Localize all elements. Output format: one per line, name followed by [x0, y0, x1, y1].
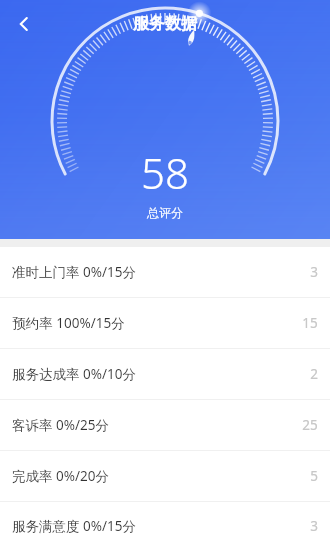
staticText: 58 — [141, 144, 189, 201]
button[interactable]: 准时上门率 0%/15分 — [0, 247, 330, 297]
button[interactable]: 完成率 0%/20分 — [0, 451, 330, 501]
staticText: 25 — [302, 416, 318, 434]
staticText: 预约率 100%/15分 — [12, 314, 125, 332]
staticText: 3 — [310, 263, 318, 281]
staticText: 15 — [302, 314, 318, 332]
staticText: 服务达成率 0%/10分 — [12, 365, 136, 383]
staticText: 总评分 — [147, 205, 183, 220]
staticText: 服务满意度 0%/15分 — [12, 517, 136, 535]
staticText: 客诉率 0%/25分 — [12, 416, 109, 434]
staticText: 完成率 0%/20分 — [12, 467, 109, 485]
staticText: 准时上门率 0%/15分 — [12, 263, 136, 281]
button[interactable]: 客诉率 0%/25分 — [0, 400, 330, 450]
button[interactable]: 服务满意度 0%/15分 — [0, 502, 330, 550]
button[interactable]: 服务达成率 0%/10分 — [0, 349, 330, 399]
button[interactable]: Back — [0, 0, 48, 48]
button[interactable]: 预约率 100%/15分 — [0, 298, 330, 348]
staticText: 5 — [310, 467, 318, 485]
staticText: 3 — [310, 517, 318, 535]
staticText: 服务数据 — [133, 14, 197, 34]
staticText: 2 — [310, 365, 318, 383]
